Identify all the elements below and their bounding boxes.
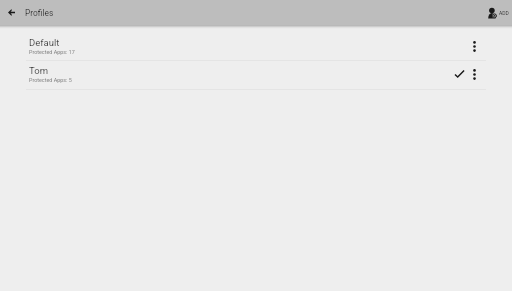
other: Active profile [449,63,471,85]
staticText: Protected Apps: 5 [29,77,72,83]
button[interactable]: Navigate up [0,0,26,25]
button[interactable]: More options [463,63,485,85]
staticText: Tom [29,65,48,76]
staticText: ADD [499,10,509,16]
button[interactable]: Default [0,32,512,60]
staticText: Profiles [25,8,54,18]
button[interactable]: Tom [0,61,512,89]
button[interactable]: More options [463,35,485,57]
button[interactable]: ADD [488,8,512,18]
staticText: Protected Apps: 17 [29,49,75,55]
staticText: Default [29,37,60,48]
